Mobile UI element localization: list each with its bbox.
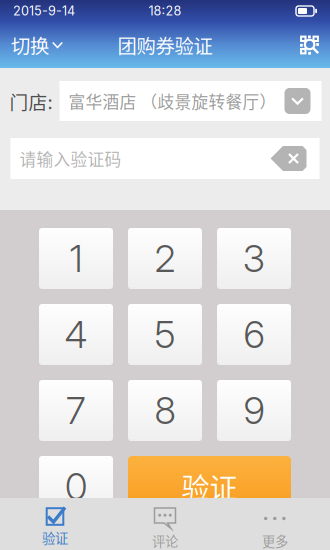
staticText: 验证 — [42, 528, 68, 547]
staticText: 3 — [243, 236, 265, 281]
staticText: 6 — [243, 312, 264, 357]
button[interactable]: 3 — [217, 228, 291, 289]
staticText: 7 — [66, 388, 86, 433]
staticText: 2 — [154, 236, 175, 281]
staticText: 切换 — [11, 31, 49, 59]
button[interactable]: 评论 — [110, 498, 220, 550]
staticText: 验证 — [181, 466, 237, 507]
button[interactable]: 验证 — [0, 498, 110, 550]
staticText: 团购券验证 — [117, 31, 212, 59]
button[interactable]: 6 — [217, 304, 291, 365]
button[interactable]: Delete — [270, 145, 307, 172]
staticText: 8 — [154, 388, 175, 433]
staticText: 2015-9-14 — [13, 3, 75, 19]
staticText: 0 — [65, 464, 87, 509]
staticText: 更多 — [262, 531, 288, 550]
button[interactable]: 9 — [217, 380, 291, 441]
button[interactable]: 1 — [39, 228, 113, 289]
staticText: 门店: — [9, 87, 52, 114]
button[interactable]: 7 — [39, 380, 113, 441]
button[interactable]: Scan QR code — [289, 22, 330, 68]
button[interactable]: Choose store — [284, 88, 310, 114]
staticText: 评论 — [152, 531, 178, 550]
staticText: 18:28 — [148, 3, 181, 19]
button[interactable]: 更多 — [220, 498, 330, 550]
staticText: 5 — [154, 312, 175, 357]
button[interactable]: 2 — [128, 228, 202, 289]
button[interactable]: 4 — [39, 304, 113, 365]
staticText: 请输入验证码 — [19, 146, 121, 170]
staticText: 富华酒店 （歧景旋转餐厅） — [68, 89, 276, 113]
staticText: 1 — [69, 236, 82, 281]
button[interactable]: 5 — [128, 304, 202, 365]
button[interactable]: 验证 — [128, 456, 291, 517]
staticText: 4 — [64, 312, 87, 357]
button[interactable]: 0 — [39, 456, 113, 517]
button[interactable]: 8 — [128, 380, 202, 441]
staticText: 9 — [243, 388, 264, 433]
button[interactable]: 切换 — [0, 22, 73, 68]
